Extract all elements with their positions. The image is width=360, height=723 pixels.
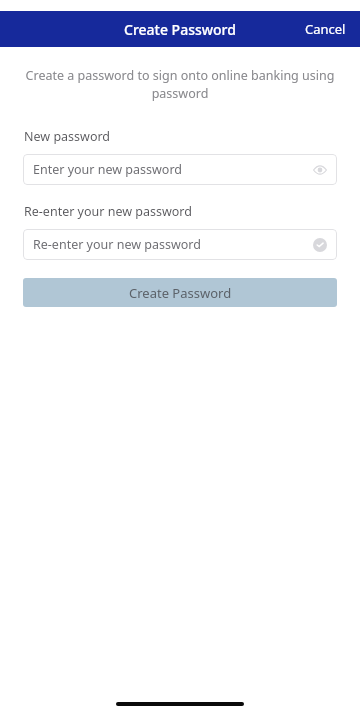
- button[interactable]: Cancel: [291, 14, 360, 44]
- staticText: Re-enter your new password: [24, 203, 192, 220]
- staticText: New password: [24, 128, 111, 145]
- button[interactable]: Create Password: [23, 278, 337, 307]
- staticText: Create Password: [129, 284, 232, 302]
- staticText: Enter your new password: [33, 161, 182, 178]
- button[interactable]: Enter your new password: [23, 154, 337, 185]
- staticText: Re-enter your new password: [33, 236, 201, 253]
- staticText: Create a password to sign onto online ba…: [24, 67, 336, 102]
- button[interactable]: Show password: [313, 163, 327, 177]
- staticText: Create Password: [124, 20, 236, 39]
- staticText: Cancel: [305, 20, 346, 38]
- button[interactable]: Re-enter your new password: [23, 229, 337, 260]
- button[interactable]: Password matches: [313, 238, 327, 252]
